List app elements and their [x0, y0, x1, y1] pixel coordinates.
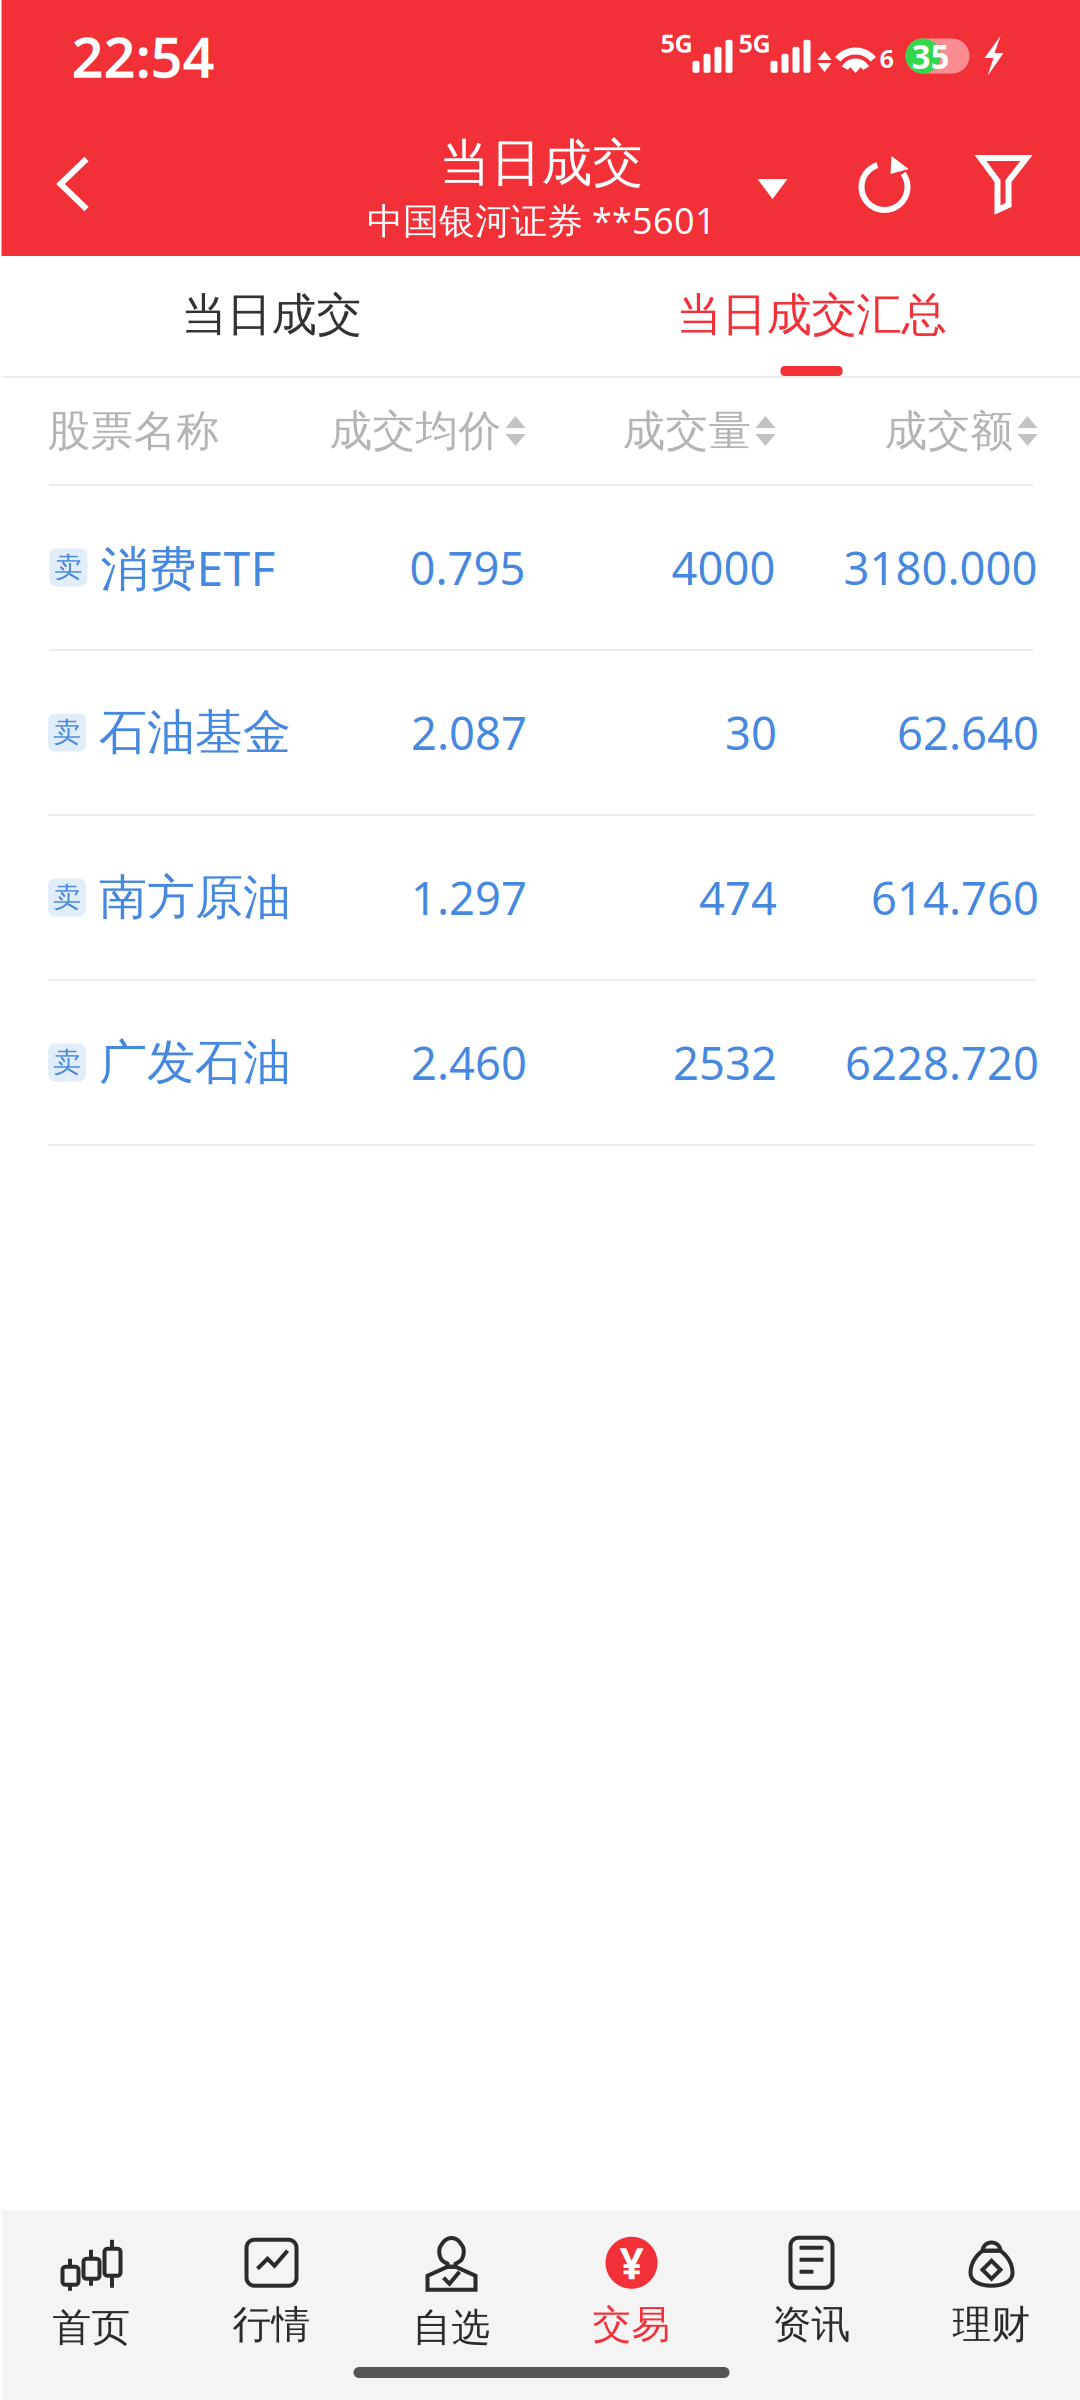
- button[interactable]: 当日成交: [1, 256, 541, 376]
- staticText: 0.795: [409, 537, 525, 598]
- button[interactable]: 卖: [0, 981, 1080, 1146]
- staticText: 474: [699, 867, 777, 928]
- staticText: 5G: [738, 26, 770, 60]
- staticText: 中国银河证券 **5601: [367, 196, 716, 244]
- staticText: 资讯: [772, 2301, 850, 2348]
- staticText: 6228.720: [845, 1032, 1039, 1093]
- staticText: 自选: [412, 2304, 490, 2351]
- staticText: 消费ETF: [100, 536, 275, 599]
- staticText: 当日成交: [439, 132, 643, 194]
- staticText: 卖: [53, 880, 81, 915]
- button[interactable]: Refresh: [833, 114, 937, 254]
- button[interactable]: 首页: [1, 2210, 181, 2348]
- staticText: 当日成交汇总: [676, 287, 946, 343]
- staticText: 1.297: [411, 867, 527, 928]
- button[interactable]: 卖: [0, 816, 1080, 981]
- staticText: 30: [725, 702, 777, 763]
- staticText: 62.640: [897, 702, 1039, 763]
- button[interactable]: 成交量: [577, 378, 775, 484]
- button[interactable]: Filter: [951, 114, 1055, 254]
- button[interactable]: 自选: [361, 2210, 541, 2348]
- staticText: 当日成交: [181, 287, 361, 343]
- staticText: 首页: [52, 2304, 130, 2351]
- staticText: 6: [879, 41, 893, 75]
- staticText: 行情: [232, 2301, 310, 2348]
- staticText: 22:54: [71, 19, 214, 93]
- button[interactable]: 成交均价: [289, 378, 525, 484]
- staticText: 南方原油: [99, 868, 291, 927]
- staticText: 614.760: [871, 867, 1039, 928]
- button[interactable]: 理财: [901, 2210, 1080, 2348]
- button[interactable]: Back: [14, 114, 132, 254]
- staticText: 2532: [673, 1032, 777, 1093]
- staticText: 理财: [952, 2301, 1030, 2348]
- staticText: 2.087: [411, 702, 527, 763]
- button[interactable]: 卖: [0, 651, 1080, 816]
- button[interactable]: 行情: [181, 2210, 361, 2348]
- staticText: 股票名称: [47, 405, 219, 457]
- button[interactable]: 成交额: [837, 378, 1037, 484]
- staticText: 成交均价: [329, 405, 501, 457]
- staticText: 5G: [660, 26, 692, 60]
- staticText: 成交额: [884, 405, 1013, 457]
- staticText: ¥: [619, 2234, 643, 2291]
- staticText: 4000: [671, 537, 775, 598]
- staticText: 2.460: [411, 1032, 527, 1093]
- button[interactable]: Switch account: [727, 114, 817, 254]
- staticText: 35: [911, 34, 949, 78]
- staticText: 交易: [592, 2301, 670, 2348]
- button[interactable]: 卖: [1, 486, 1080, 651]
- button[interactable]: 当日成交汇总: [541, 256, 1080, 376]
- staticText: 卖: [54, 550, 82, 585]
- button[interactable]: ¥: [541, 2210, 721, 2348]
- staticText: 石油基金: [99, 703, 291, 762]
- staticText: 广发石油: [99, 1033, 291, 1092]
- button[interactable]: 资讯: [721, 2210, 901, 2348]
- staticText: 卖: [53, 1045, 81, 1080]
- staticText: 卖: [53, 715, 81, 750]
- staticText: 成交量: [622, 405, 751, 457]
- staticText: 3180.000: [843, 537, 1037, 598]
